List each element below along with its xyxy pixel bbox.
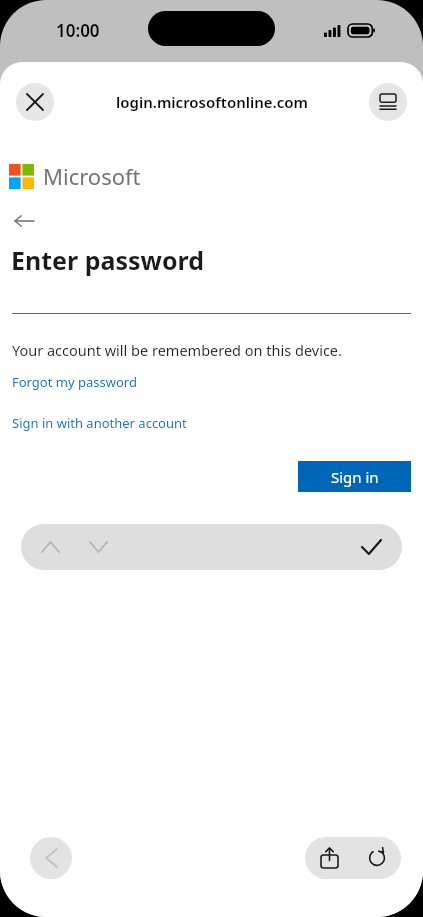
button[interactable]: Sign in [298,461,411,492]
button[interactable]: Reload [353,837,401,879]
button[interactable]: Close [16,83,54,121]
staticText: Enter password [11,243,205,277]
staticText: login.microsoftonline.com [116,92,308,112]
button[interactable]: Share [305,837,353,879]
button[interactable]: Back [30,837,72,879]
button[interactable]: Sign in with another account [0,412,199,434]
button[interactable]: Next field [79,528,117,566]
button[interactable]: Done [352,528,390,566]
button[interactable]: Forgot my password [0,371,149,393]
button[interactable]: Back [8,205,40,237]
staticText: Forgot my password [12,373,137,391]
staticText: 10:00 [56,19,100,42]
staticText: Microsoft [43,161,141,191]
staticText: Sign in [331,467,379,487]
button[interactable]: Page settings [369,83,407,121]
button[interactable]: Previous field [31,528,69,566]
staticText: Sign in with another account [12,414,187,432]
staticText: Your account will be remembered on this … [12,340,342,360]
